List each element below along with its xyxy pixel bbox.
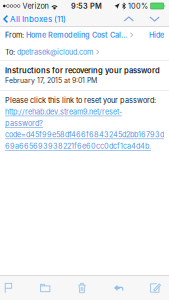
button[interactable]: Reply — [111, 276, 126, 300]
staticText: http://rehab.dev.stream9.net/reset- — [5, 107, 122, 116]
staticText: Please click this link to reset your pas… — [5, 96, 156, 105]
staticText: dpetrasek@icloud.com — [17, 48, 93, 56]
staticText: To: — [5, 48, 17, 56]
staticText: code=d45f99e58df466f6843245d2bb16793d — [5, 130, 164, 139]
button[interactable]: From: — [0, 26, 169, 43]
staticText: All Inboxes (11) — [10, 14, 66, 24]
staticText: Verizon — [22, 2, 48, 10]
staticText: 9:53 PM — [71, 2, 102, 10]
button[interactable]: Next message — [145, 13, 164, 25]
staticText: Instructions for recovering your passwor… — [5, 66, 160, 75]
staticText: From: — [5, 31, 26, 39]
button[interactable]: Previous message — [119, 13, 138, 25]
staticText: February 17, 2015 at 9:01 PM — [5, 76, 97, 85]
button[interactable]: All Inboxes (11) — [3, 12, 66, 26]
button[interactable]: Delete — [74, 276, 89, 300]
staticText: 69a665693938221f6e60cc0dcf1ca4d4b. — [5, 142, 151, 150]
staticText: Hide — [149, 31, 164, 39]
button[interactable]: Move to folder — [38, 276, 53, 300]
button[interactable]: To: — [0, 43, 169, 60]
button[interactable]: http://rehab.dev.stream9.net/reset- — [5, 107, 164, 150]
staticText: Home Remodeling Cost Cal... — [26, 31, 127, 39]
staticText: 100% — [128, 2, 148, 10]
staticText: password? — [5, 119, 43, 128]
button[interactable]: Compose — [148, 276, 163, 300]
button[interactable]: Flag — [1, 276, 16, 300]
